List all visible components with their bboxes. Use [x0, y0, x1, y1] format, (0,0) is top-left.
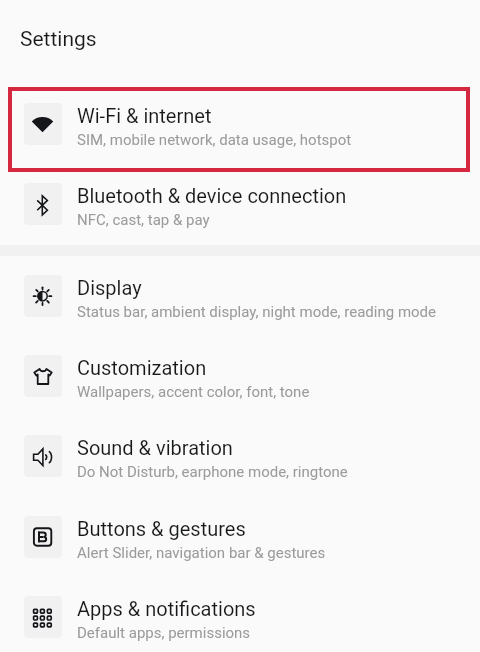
staticText: Wallpapers, accent color, font, tone — [77, 383, 310, 401]
other: Apps and notifications — [24, 596, 62, 638]
button[interactable]: Wi-Fi and internet — [0, 84, 480, 164]
other: Display — [24, 275, 62, 317]
staticText: Sound & vibration — [77, 436, 233, 459]
button[interactable]: Display — [0, 256, 480, 336]
button[interactable]: Customization — [0, 336, 480, 416]
staticText: Default apps, permissions — [77, 624, 251, 642]
staticText: Apps & notifications — [77, 597, 256, 620]
staticText: NFC, cast, tap & pay — [77, 211, 210, 229]
staticText: Display — [77, 276, 142, 299]
button[interactable]: Buttons and gestures — [0, 497, 480, 577]
other: Wi-Fi and internet — [24, 103, 62, 145]
button[interactable]: Sound and vibration — [0, 416, 480, 496]
staticText: Buttons & gestures — [77, 517, 246, 540]
staticText: Customization — [77, 356, 207, 379]
staticText: Alert Slider, navigation bar & gestures — [77, 544, 326, 562]
staticText: Settings — [20, 27, 97, 52]
staticText: Wi-Fi & internet — [77, 104, 212, 127]
staticText: Bluetooth & device connection — [77, 184, 347, 207]
staticText: Status bar, ambient display, night mode,… — [77, 303, 437, 321]
button[interactable]: Bluetooth and device connection — [0, 164, 480, 244]
other: Sound and vibration — [24, 435, 62, 477]
staticText: Do Not Disturb, earphone mode, ringtone — [77, 463, 348, 481]
other: Buttons and gestures — [24, 516, 62, 558]
other: Customization — [24, 355, 62, 397]
staticText: SIM, mobile network, data usage, hotspot — [77, 131, 352, 149]
button[interactable]: Apps and notifications — [0, 577, 480, 652]
other: Bluetooth and device connection — [24, 183, 62, 225]
